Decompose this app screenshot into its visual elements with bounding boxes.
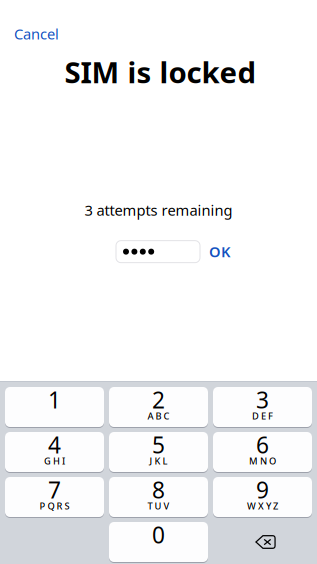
button[interactable]: 3 (213, 387, 312, 427)
staticText: Cancel (14, 24, 59, 43)
staticText: 3 attempts remaining (84, 200, 232, 220)
staticText: SIM is locked (64, 52, 256, 91)
button[interactable]: Cancel (11, 19, 62, 48)
staticText: M N O (249, 455, 276, 467)
button[interactable]: 9 (213, 477, 312, 517)
staticText: 5 (152, 430, 165, 460)
button[interactable]: 7 (5, 477, 104, 517)
staticText: G H I (44, 455, 65, 467)
staticText: 9 (256, 475, 269, 505)
staticText: 6 (256, 430, 269, 460)
staticText: 7 (48, 475, 61, 505)
staticText: 0 (152, 520, 165, 550)
button[interactable]: 0 (109, 522, 208, 562)
staticText: 1 (48, 385, 61, 415)
staticText: 8 (152, 475, 165, 505)
staticText: OK (209, 242, 230, 261)
button[interactable]: 6 (213, 432, 312, 472)
staticText: A B C (147, 410, 169, 422)
button[interactable]: OK (209, 238, 230, 265)
staticText: T U V (147, 500, 169, 512)
staticText: 3 (256, 385, 269, 415)
button[interactable]: 1 (5, 387, 104, 427)
staticText: 4 (48, 430, 61, 460)
staticText: J K L (149, 455, 167, 467)
staticText: P Q R S (39, 500, 69, 512)
button[interactable]: 2 (109, 387, 208, 427)
staticText: 2 (152, 385, 165, 415)
button[interactable]: 4 (5, 432, 104, 472)
staticText: W X Y Z (247, 500, 278, 512)
staticText: D E F (252, 410, 273, 422)
button[interactable]: 5 (109, 432, 208, 472)
button[interactable]: Delete (213, 522, 312, 562)
button[interactable]: 8 (109, 477, 208, 517)
